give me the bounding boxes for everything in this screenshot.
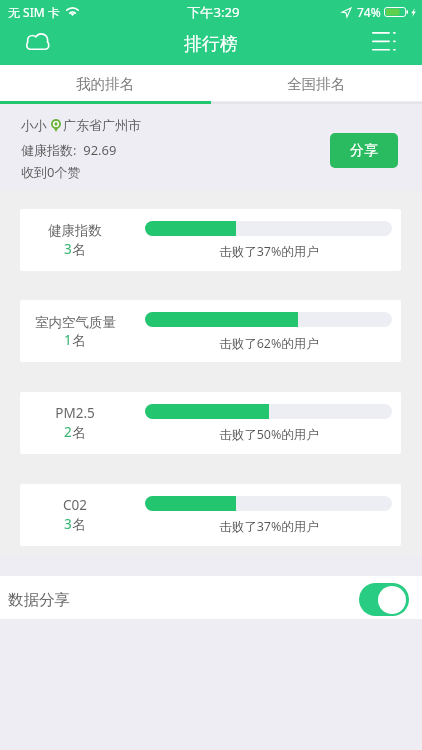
button[interactable] (20, 209, 401, 271)
staticText: 广东省广州市 (63, 117, 141, 133)
button[interactable]: 全国排名 (211, 66, 422, 102)
staticText: 分享 (350, 142, 378, 160)
staticText: 名 (72, 516, 86, 533)
button[interactable]: Data sharing switch, on (359, 583, 409, 616)
staticText: 名 (72, 424, 86, 441)
button[interactable] (20, 392, 401, 454)
button[interactable] (20, 300, 401, 362)
staticText: 小小 (21, 117, 47, 133)
staticText: 健康指数 (48, 222, 102, 239)
staticText: PM2.5 (55, 404, 95, 422)
button[interactable] (20, 484, 401, 546)
staticText: 名 (72, 241, 86, 258)
staticText: 室内空气质量 (35, 314, 116, 331)
staticText: 击败了37%的用户 (219, 518, 319, 535)
staticText: 1 (64, 331, 72, 349)
staticText: 收到0个赞 (21, 163, 81, 181)
staticText: 74% (357, 4, 381, 20)
button[interactable]: 我的排名 (0, 66, 211, 102)
staticText: 排行榜 (184, 33, 238, 56)
button[interactable]: 数据分享 (0, 576, 422, 619)
staticText: 数据分享 (8, 590, 70, 610)
button[interactable]: 分享 (330, 133, 398, 168)
staticText: C02 (63, 496, 87, 514)
staticText: 3 (64, 515, 72, 533)
staticText: 击败了37%的用户 (219, 243, 319, 260)
staticText: 击败了50%的用户 (219, 426, 319, 443)
staticText: 击败了62%的用户 (219, 335, 319, 352)
button[interactable]: Weather (20, 26, 57, 61)
staticText: 无 SIM 卡 (8, 4, 60, 20)
staticText: 名 (72, 332, 86, 349)
staticText: 3 (64, 240, 72, 258)
button[interactable]: Menu (366, 25, 402, 61)
staticText: 全国排名 (287, 75, 346, 93)
staticText: 我的排名 (76, 75, 135, 93)
staticText: 2 (64, 423, 72, 441)
staticText: 健康指数: 92.69 (21, 141, 117, 159)
staticText: 下午3:29 (187, 3, 240, 21)
